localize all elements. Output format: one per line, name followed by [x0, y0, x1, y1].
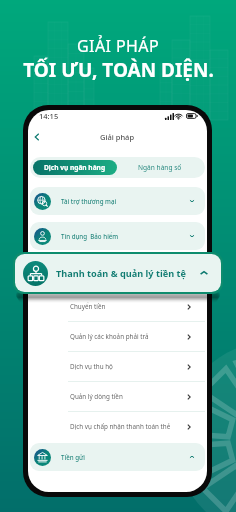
staticText: Tín dụng Bảo hiểm	[61, 232, 119, 240]
staticText: Giải pháp	[100, 132, 135, 142]
staticText: Chuyển tiền	[70, 302, 106, 311]
button[interactable]: Chuyển tiền	[28, 292, 207, 321]
staticText: Dịch vụ thu hộ	[70, 362, 113, 371]
staticText: Quản lý dòng tiền	[70, 392, 123, 401]
staticText: GIẢI PHÁP	[77, 35, 159, 57]
button[interactable]: Dịch vụ chấp nhận thanh toán thẻ	[28, 412, 207, 441]
button[interactable]: Dịch vụ thu hộ	[28, 352, 207, 381]
staticText: TỐI ƯU, TOÀN DIỆN.	[23, 57, 214, 83]
button[interactable]: Quản lý các khoản phải trả	[28, 322, 207, 351]
staticText: Tài trợ thương mại	[61, 197, 117, 205]
staticText: 14:15	[39, 111, 59, 121]
button[interactable]: Ngân hàng số	[117, 160, 202, 175]
staticText: Ngân hàng số	[138, 163, 182, 172]
button[interactable]: Dịch vụ ngân hàng	[33, 160, 117, 175]
button[interactable]: Thanh toán & quản lý tiền tệ	[15, 254, 221, 292]
staticText: Dịch vụ ngân hàng	[44, 163, 106, 172]
button[interactable]: Tài trợ thương mại	[30, 187, 205, 215]
staticText: Tiền gửi	[61, 453, 86, 461]
button[interactable]: Quản lý dòng tiền	[28, 382, 207, 411]
button[interactable]: Tín dụng Bảo hiểm	[30, 222, 205, 250]
staticText: Dịch vụ chấp nhận thanh toán thẻ	[70, 422, 171, 431]
staticText: Quản lý các khoản phải trả	[70, 332, 149, 341]
button[interactable]: Tiền gửi	[30, 443, 205, 471]
button[interactable]: Back	[30, 130, 44, 144]
staticText: Thanh toán & quản lý tiền tệ	[56, 267, 187, 280]
